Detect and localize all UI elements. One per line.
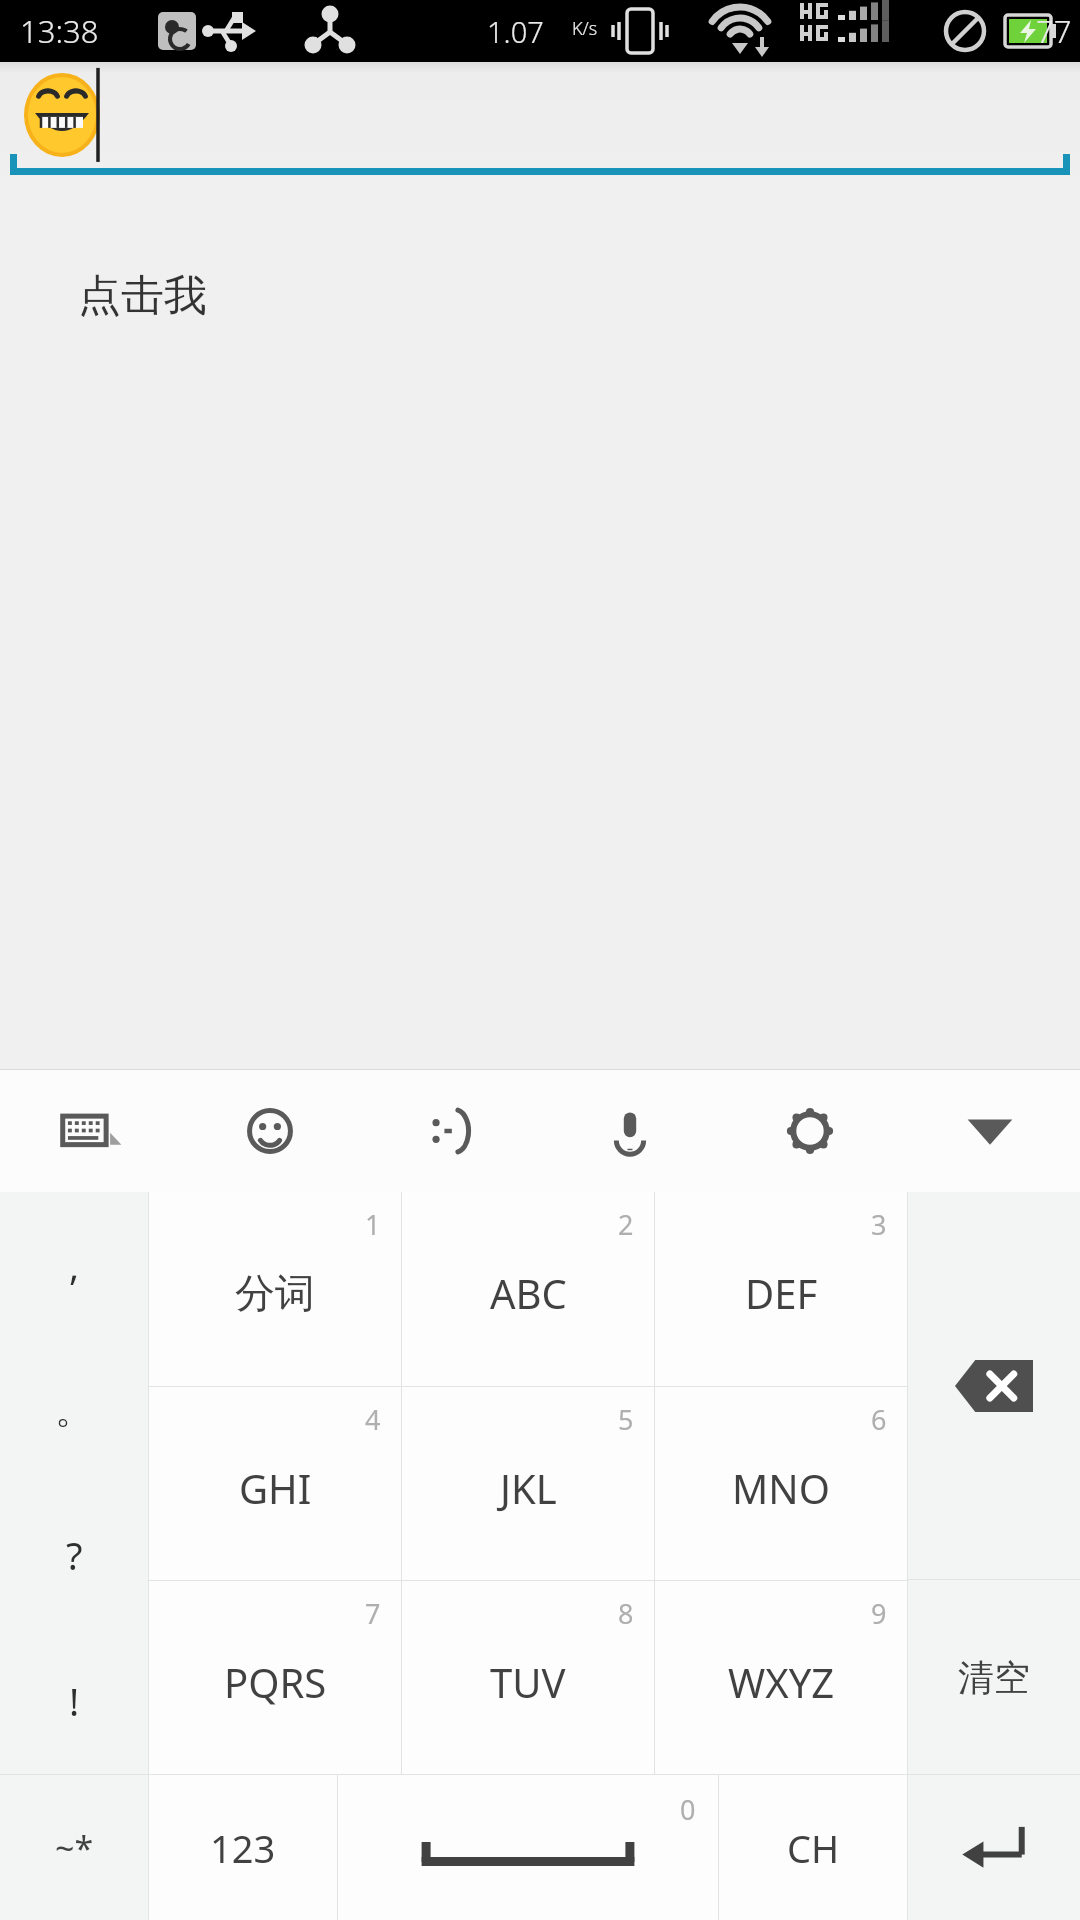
button[interactable] bbox=[0, 62, 1080, 177]
button[interactable]: ? bbox=[0, 1482, 148, 1628]
button[interactable]: 4 bbox=[149, 1387, 401, 1580]
button[interactable]: 点击我 bbox=[78, 269, 207, 323]
button[interactable]: Emoticons bbox=[360, 1070, 540, 1192]
button[interactable]: ! bbox=[0, 1628, 148, 1774]
button[interactable]: Voice input bbox=[540, 1070, 720, 1192]
button[interactable]: 1 bbox=[149, 1192, 401, 1386]
button[interactable]: 7 bbox=[149, 1581, 401, 1774]
staticText: 4 bbox=[365, 1401, 381, 1438]
button[interactable]: , bbox=[0, 1192, 148, 1337]
button[interactable]: 3 bbox=[655, 1192, 907, 1386]
staticText: 清空 bbox=[958, 1655, 1030, 1700]
button[interactable]: ~* bbox=[0, 1775, 148, 1920]
staticText: ABC bbox=[490, 1266, 567, 1320]
staticText: JKL bbox=[500, 1461, 557, 1515]
button[interactable]: Settings bbox=[720, 1070, 900, 1192]
staticText: 9 bbox=[871, 1595, 887, 1632]
staticText: 6 bbox=[871, 1401, 887, 1438]
button[interactable]: Delete bbox=[908, 1192, 1080, 1579]
button[interactable]: 6 bbox=[655, 1387, 907, 1580]
button[interactable]: 。 bbox=[0, 1337, 148, 1482]
button[interactable]: 9 bbox=[655, 1581, 907, 1774]
staticText: DEF bbox=[745, 1266, 818, 1320]
button[interactable]: 5 bbox=[402, 1387, 654, 1580]
button[interactable]: 2 bbox=[402, 1192, 654, 1386]
staticText: , bbox=[69, 1239, 80, 1291]
staticText: K/s bbox=[572, 16, 598, 41]
button[interactable]: 清空 bbox=[908, 1580, 1080, 1774]
button[interactable]: Keyboard layout bbox=[0, 1070, 180, 1192]
staticText: ? bbox=[66, 1529, 83, 1581]
staticText: ! bbox=[69, 1675, 80, 1727]
staticText: CH bbox=[787, 1822, 840, 1874]
button[interactable]: Hide keyboard bbox=[900, 1070, 1080, 1192]
button[interactable]: CH bbox=[719, 1775, 907, 1920]
staticText: PQRS bbox=[224, 1655, 327, 1709]
button[interactable]: 8 bbox=[402, 1581, 654, 1774]
staticText: 2 bbox=[618, 1206, 634, 1243]
staticText: 123 bbox=[210, 1822, 276, 1874]
staticText: 3 bbox=[871, 1206, 887, 1243]
staticText: 13:38 bbox=[20, 10, 99, 52]
staticText: 7 bbox=[365, 1595, 381, 1632]
button[interactable]: 123 bbox=[149, 1775, 337, 1920]
staticText: 0 bbox=[680, 1791, 696, 1828]
staticText: GHI bbox=[239, 1461, 312, 1515]
staticText: ~* bbox=[55, 1825, 94, 1871]
staticText: MNO bbox=[732, 1461, 830, 1515]
staticText: TUV bbox=[490, 1655, 566, 1709]
staticText: 。 bbox=[55, 1386, 93, 1434]
staticText: WXYZ bbox=[728, 1655, 835, 1709]
button[interactable]: 0 bbox=[338, 1775, 718, 1920]
staticText: 1.07 bbox=[487, 12, 544, 51]
staticText: 77 bbox=[1036, 10, 1072, 52]
staticText: 5 bbox=[618, 1401, 634, 1438]
staticText: 8 bbox=[618, 1595, 634, 1632]
button[interactable]: Emoji bbox=[180, 1070, 360, 1192]
button[interactable]: Enter bbox=[908, 1775, 1080, 1920]
staticText: 分词 bbox=[235, 1268, 315, 1318]
staticText: 1 bbox=[365, 1206, 381, 1243]
